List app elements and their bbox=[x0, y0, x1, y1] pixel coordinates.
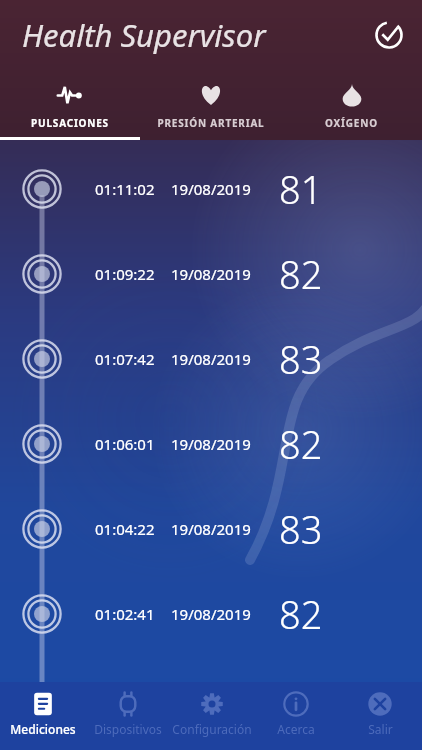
staticText: 19/08/2019 bbox=[171, 179, 251, 199]
staticText: 83 bbox=[279, 503, 323, 555]
staticText: Configuración bbox=[172, 721, 252, 737]
staticText: PRESIÓN ARTERIAL bbox=[157, 116, 265, 130]
staticText: Acerca bbox=[277, 721, 315, 737]
button[interactable]: Mediciones bbox=[0, 682, 85, 750]
button[interactable]: Salir bbox=[338, 682, 422, 750]
staticText: 01:09:22 bbox=[95, 264, 155, 284]
button[interactable]: Confirmar bbox=[368, 14, 410, 56]
button[interactable]: Acerca bbox=[254, 682, 338, 750]
staticText: 01:02:41 bbox=[95, 604, 155, 624]
staticText: Salir bbox=[368, 721, 393, 737]
staticText: OXÍGENO bbox=[325, 116, 378, 130]
button[interactable]: Configuración bbox=[170, 682, 254, 750]
staticText: PULSACIONES bbox=[31, 116, 109, 130]
staticText: 19/08/2019 bbox=[171, 604, 251, 624]
staticText: Mediciones bbox=[10, 721, 76, 737]
staticText: 82 bbox=[279, 588, 323, 640]
staticText: 01:07:42 bbox=[95, 349, 155, 369]
staticText: 19/08/2019 bbox=[171, 349, 251, 369]
staticText: 81 bbox=[279, 163, 323, 215]
staticText: 01:04:22 bbox=[95, 519, 155, 539]
button[interactable]: PULSACIONES bbox=[0, 78, 140, 140]
button[interactable]: PRESIÓN ARTERIAL bbox=[140, 78, 281, 140]
button[interactable]: 01:09:22 bbox=[0, 231, 422, 316]
staticText: 19/08/2019 bbox=[171, 434, 251, 454]
button[interactable]: 01:02:41 bbox=[0, 571, 422, 656]
button[interactable]: 01:07:42 bbox=[0, 316, 422, 401]
staticText: 19/08/2019 bbox=[171, 264, 251, 284]
button[interactable]: 01:11:02 bbox=[0, 146, 422, 231]
staticText: Health Supervisor bbox=[22, 14, 266, 56]
staticText: 01:06:01 bbox=[95, 434, 155, 454]
staticText: 82 bbox=[279, 248, 323, 300]
button[interactable]: 01:04:22 bbox=[0, 486, 422, 571]
button[interactable]: Dispositivos bbox=[85, 682, 170, 750]
staticText: 83 bbox=[279, 333, 323, 385]
staticText: Dispositivos bbox=[94, 721, 162, 737]
button[interactable]: 01:06:01 bbox=[0, 401, 422, 486]
staticText: 19/08/2019 bbox=[171, 519, 251, 539]
button[interactable]: OXÍGENO bbox=[281, 78, 422, 140]
staticText: 82 bbox=[279, 418, 323, 470]
staticText: 01:11:02 bbox=[95, 179, 155, 199]
